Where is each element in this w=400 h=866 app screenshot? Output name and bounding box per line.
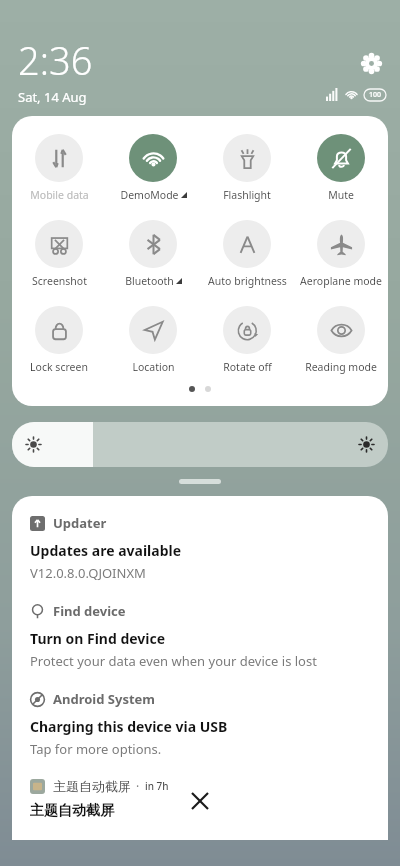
button[interactable]: Clear all notifications bbox=[178, 779, 222, 823]
button[interactable]: Rotate off bbox=[200, 304, 294, 376]
staticText: Tap for more options. bbox=[30, 740, 162, 758]
button[interactable]: Mute bbox=[294, 132, 388, 204]
staticText: Turn on Find device bbox=[30, 629, 166, 648]
button[interactable]: Brightness bbox=[12, 422, 388, 467]
staticText: Protect your data even when your device … bbox=[30, 652, 317, 670]
staticText: Mute bbox=[328, 188, 354, 202]
staticText: 主题自动截屏 bbox=[53, 778, 131, 794]
staticText: DemoMode bbox=[120, 188, 179, 202]
staticText: Charging this device via USB bbox=[30, 717, 228, 736]
button[interactable]: Reading mode bbox=[294, 304, 388, 376]
staticText: Aeroplane mode bbox=[300, 274, 382, 288]
button[interactable]: Android System bbox=[30, 690, 370, 758]
button[interactable]: Screenshot bbox=[12, 218, 106, 290]
staticText: Mobile data bbox=[30, 188, 89, 202]
staticText: Updates are available bbox=[30, 541, 182, 560]
staticText: Bluetooth bbox=[125, 274, 174, 288]
staticText: 100 bbox=[369, 90, 382, 100]
staticText: Screenshot bbox=[32, 274, 87, 288]
button[interactable]: Settings bbox=[358, 50, 384, 76]
staticText: · bbox=[136, 778, 140, 794]
staticText: Sat, 14 Aug bbox=[18, 88, 87, 106]
staticText: Find device bbox=[53, 602, 126, 620]
staticText: Lock screen bbox=[30, 360, 88, 374]
button[interactable]: Find device bbox=[30, 602, 370, 670]
button[interactable]: Flashlight bbox=[200, 132, 294, 204]
button[interactable]: Auto brightness bbox=[200, 218, 294, 290]
staticText: Rotate off bbox=[223, 360, 272, 374]
staticText: 2:36 bbox=[18, 34, 93, 86]
button[interactable]: Lock screen bbox=[12, 304, 106, 376]
button[interactable]: Location bbox=[106, 304, 200, 376]
staticText: 主题自动截屏 bbox=[30, 802, 114, 820]
staticText: V12.0.8.0.QJOINXM bbox=[30, 564, 146, 582]
staticText: Reading mode bbox=[305, 360, 377, 374]
staticText: in 7h bbox=[145, 779, 169, 793]
staticText: Auto brightness bbox=[208, 274, 287, 288]
button[interactable]: Aeroplane mode bbox=[294, 218, 388, 290]
staticText: Updater bbox=[53, 514, 107, 532]
staticText: Location bbox=[132, 360, 175, 374]
staticText: Android System bbox=[53, 690, 156, 708]
button[interactable]: Bluetooth bbox=[106, 218, 200, 290]
button[interactable]: Updater bbox=[30, 514, 370, 582]
button[interactable]: Mobile data bbox=[12, 132, 106, 204]
staticText: Flashlight bbox=[223, 188, 271, 202]
button[interactable]: DemoMode bbox=[106, 132, 200, 204]
